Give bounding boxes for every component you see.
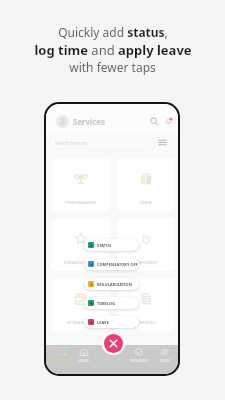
staticText: with fewer taps (69, 59, 156, 75)
button[interactable]: ATTENDANCE (52, 278, 110, 331)
button[interactable]: PERFORMANCE (52, 158, 110, 211)
button[interactable]: ORGANIZATION (52, 218, 110, 271)
staticText: PAYROLL (137, 320, 156, 326)
button[interactable]: SERVICES (48, 348, 76, 363)
button[interactable]: TIMELOG (88, 297, 139, 309)
button[interactable]: PAYROLL (117, 278, 175, 331)
button[interactable]: HOME (70, 348, 98, 363)
staticText: PERFORMANCE (65, 200, 97, 206)
button[interactable]: Search (150, 117, 159, 126)
staticText: LEAVE (97, 320, 109, 325)
staticText: REGULARIZATION (97, 282, 132, 287)
button[interactable]: COMPENSATORY OFF (88, 258, 139, 270)
button[interactable]: APPROVALS (125, 348, 153, 363)
staticText: SERVICES (55, 359, 70, 363)
staticText: LEAVE (140, 200, 153, 206)
staticText: ATTENDANCE (67, 320, 95, 326)
button[interactable]: REGULARIZATION (88, 278, 139, 290)
button[interactable]: Services (56, 114, 105, 129)
staticText: log time and apply leave (34, 41, 192, 59)
button[interactable]: Close menu (104, 334, 123, 353)
staticText: COMPENSATORY OFF (97, 262, 139, 267)
button[interactable]: LEAVE (117, 158, 175, 211)
button[interactable]: TIMESHEET (117, 218, 175, 271)
staticText: STATUS (97, 243, 112, 248)
staticText: TIMELOG (97, 301, 116, 306)
button[interactable]: MORE (151, 348, 178, 363)
button[interactable]: STATUS (88, 239, 139, 251)
staticText: MORE (160, 359, 170, 363)
staticText: TIMESHEET (134, 260, 158, 266)
staticText: Services (73, 116, 105, 127)
staticText: APPROVALS (130, 359, 149, 363)
staticText: Quickly add status, (58, 24, 168, 40)
button[interactable]: LEAVE (88, 316, 139, 328)
button[interactable]: Filter (158, 138, 167, 147)
staticText: Search Services (55, 140, 87, 146)
staticText: HOME (79, 359, 89, 363)
button[interactable]: Notifications (164, 117, 173, 126)
staticText: ORGANIZATION (64, 260, 98, 266)
button[interactable]: Search Services (52, 137, 150, 148)
